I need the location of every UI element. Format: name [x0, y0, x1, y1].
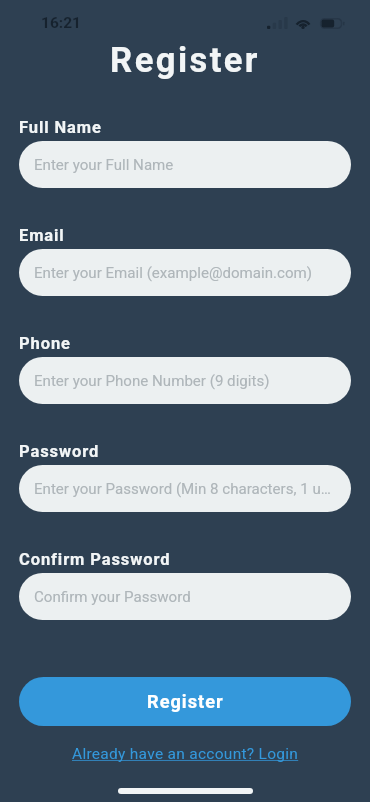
button[interactable]: Register: [19, 677, 351, 726]
staticText: Enter your Email (example@domain.com): [34, 264, 313, 282]
staticText: Register: [0, 40, 370, 81]
button[interactable]: Enter your Phone Number (9 digits): [19, 357, 351, 404]
staticText: Password: [19, 442, 100, 461]
staticText: Enter your Phone Number (9 digits): [34, 372, 270, 390]
button[interactable]: Confirm your Password: [19, 573, 351, 620]
other: Battery: [320, 18, 345, 29]
staticText: Enter your Full Name: [34, 156, 174, 174]
other: Wi-Fi: [295, 18, 311, 29]
staticText: Phone: [19, 334, 71, 353]
button[interactable]: Enter your Full Name: [19, 141, 351, 188]
button[interactable]: Enter your Email (example@domain.com): [19, 249, 351, 296]
staticText: Confirm your Password: [34, 588, 191, 606]
button[interactable]: Already have an account? Login: [72, 745, 299, 763]
button[interactable]: Enter your Password (Min 8 characters, 1…: [19, 465, 351, 512]
other: Cellular signal: [267, 17, 290, 29]
staticText: Register: [147, 691, 224, 712]
staticText: Full Name: [19, 118, 102, 137]
staticText: Confirm Password: [19, 550, 171, 569]
staticText: Email: [19, 226, 65, 245]
staticText: 16:21: [41, 14, 81, 32]
staticText: Enter your Password (Min 8 characters, 1…: [34, 480, 336, 498]
